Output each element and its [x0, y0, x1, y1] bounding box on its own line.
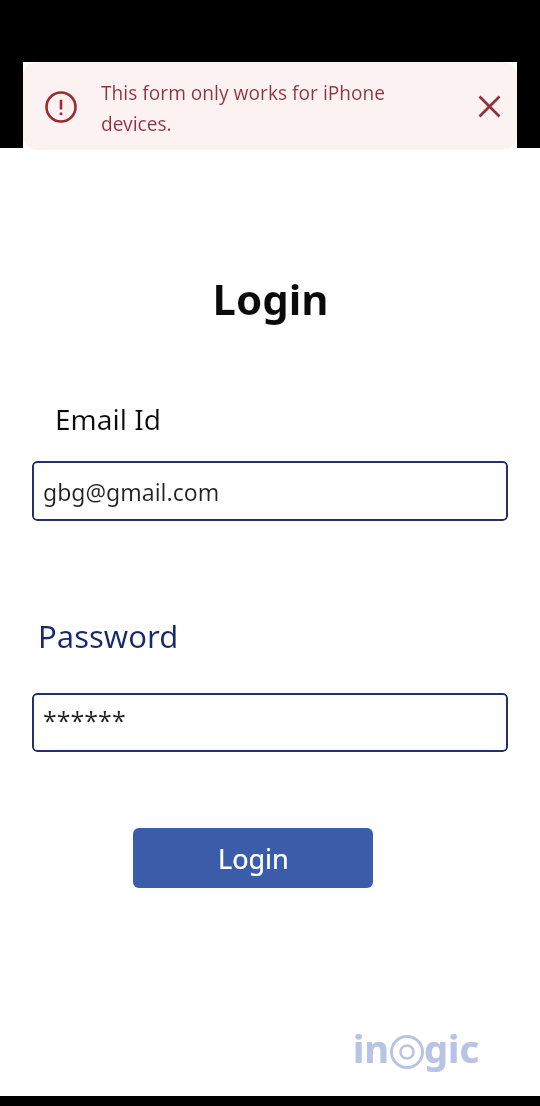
staticText: Login: [212, 270, 329, 327]
button[interactable]: gbg@gmail.com: [32, 461, 508, 521]
staticText: Password: [38, 615, 179, 657]
staticText: This form only works for iPhone: [101, 80, 385, 106]
staticText: gic: [424, 1022, 479, 1074]
staticText: ******: [43, 703, 126, 737]
button[interactable]: Login: [133, 828, 373, 888]
staticText: Login: [218, 840, 289, 877]
staticText: gbg@gmail.com: [43, 476, 220, 507]
button[interactable]: ******: [32, 693, 508, 752]
button[interactable]: Close: [467, 84, 511, 128]
staticText: Email Id: [55, 400, 161, 438]
staticText: devices.: [101, 111, 172, 137]
staticText: in: [353, 1022, 390, 1074]
